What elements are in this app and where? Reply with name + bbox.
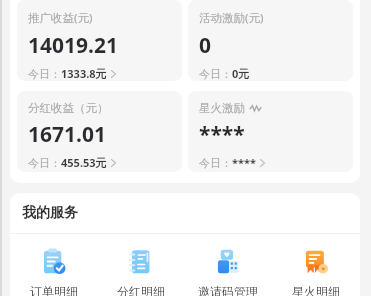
staticText: 星火激励 [199,101,245,115]
button[interactable]: 推广收益(元) [17,0,182,81]
button[interactable]: 星火明细 [272,245,360,296]
button[interactable]: 活动激励(元) [188,0,353,81]
button[interactable]: 分红明细 [97,245,184,296]
staticText: 今日： [199,156,232,170]
other: 邀请码管理 [214,248,242,276]
staticText: 今日： [28,67,61,81]
button[interactable]: 星火激励 [188,91,353,172]
staticText: 今日： [28,156,61,170]
staticText: **** [232,155,256,170]
staticText: 0元 [232,66,250,81]
staticText: 分红明细 [117,284,165,296]
staticText: 455.53元 [61,155,107,170]
button[interactable]: 订单明细 [10,245,97,296]
staticText: 今日： [199,67,232,81]
other: 星火明细 [302,248,330,276]
other: 订单明细 [40,248,68,276]
staticText: **** [199,120,245,149]
other: 分红明细 [127,248,155,276]
staticText: 1333.8元 [61,66,107,81]
staticText: 邀请码管理 [198,284,258,296]
staticText: 活动激励(元) [199,10,264,26]
staticText: 分红收益（元） [28,101,109,115]
staticText: 我的服务 [22,204,78,222]
staticText: 星火明细 [292,284,340,296]
button[interactable]: 分红收益（元） [17,91,182,172]
button[interactable]: 邀请码管理 [184,245,272,296]
staticText: 推广收益(元) [28,10,93,26]
staticText: 14019.21 [28,31,118,60]
staticText: 1671.01 [28,120,106,149]
staticText: 订单明细 [30,284,78,296]
staticText: 0 [199,31,212,60]
